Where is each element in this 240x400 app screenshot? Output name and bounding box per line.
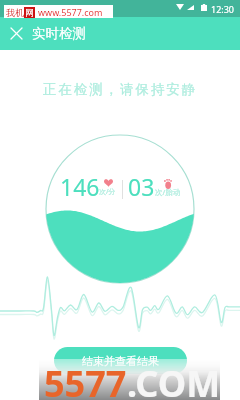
staticText: 次/胎动	[155, 187, 181, 197]
staticText: 实时检测	[32, 25, 86, 42]
staticText: 我机	[6, 7, 24, 18]
button[interactable]: 结束并查看结果	[54, 347, 187, 374]
staticText: 03	[128, 171, 155, 202]
staticText: 结束并查看结果	[82, 354, 159, 368]
staticText: 12:30	[211, 3, 235, 15]
staticText: www.5577.com	[38, 6, 103, 18]
staticText: 正在检测，请保持安静	[0, 81, 240, 98]
staticText: 次/分	[99, 187, 116, 197]
button[interactable]: Close	[0, 17, 33, 50]
staticText: 5577	[44, 359, 127, 400]
staticText: 网	[25, 7, 34, 18]
staticText: .COM	[127, 359, 221, 400]
staticText: 146	[60, 171, 100, 202]
